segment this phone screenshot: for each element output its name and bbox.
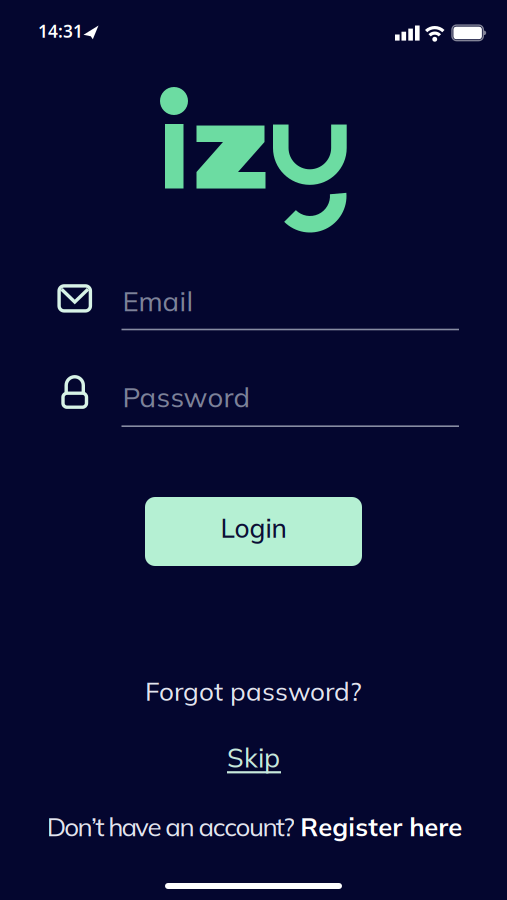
button[interactable]: Login <box>145 497 362 566</box>
staticText: Forgot password? <box>145 675 362 707</box>
button[interactable]: Skip <box>223 740 283 774</box>
staticText: Password <box>122 380 250 414</box>
staticText: Register here <box>300 810 462 842</box>
button[interactable]: Forgot password? <box>145 675 362 707</box>
staticText: Login <box>220 512 286 544</box>
staticText: 14:31 <box>38 19 83 42</box>
button[interactable]: Password <box>55 373 459 428</box>
staticText: Skip <box>227 741 280 774</box>
staticText: Email <box>122 284 193 318</box>
staticText: Don’t have an account? <box>47 810 295 843</box>
button[interactable]: Don’t have an account? <box>47 810 462 843</box>
button[interactable]: Email <box>55 282 459 332</box>
